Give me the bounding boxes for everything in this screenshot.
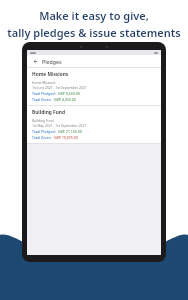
staticText: GBP 4,450.00 (54, 97, 76, 102)
button[interactable]: Back (31, 57, 39, 65)
staticText: tally pledges & issue statements (7, 25, 181, 40)
staticText: Total Pledged: (32, 129, 56, 134)
button[interactable]: Home Missions (27, 68, 161, 105)
staticText: Total Pledged: (32, 91, 56, 96)
staticText: Home Missions (32, 80, 56, 84)
staticText: Make it easy to give, (39, 8, 149, 23)
staticText: Total Given: (32, 135, 52, 140)
staticText: GBP 10,075.00 (54, 135, 78, 140)
staticText: GBP 21,150.00 (58, 129, 82, 134)
staticText: GBP 8,650.00 (58, 91, 80, 96)
staticText: Pledges (42, 58, 62, 65)
staticText: Home Missions (32, 71, 69, 78)
staticText: 1st May 2021 - 1st September 2021 (32, 123, 87, 127)
button[interactable]: Building Fund (27, 106, 161, 143)
staticText: Building Fund (32, 109, 65, 116)
staticText: Total Given: (32, 97, 52, 102)
staticText: Building Fund (32, 118, 54, 122)
staticText: 1st June 2021 - 1st September 2021 (32, 85, 87, 89)
